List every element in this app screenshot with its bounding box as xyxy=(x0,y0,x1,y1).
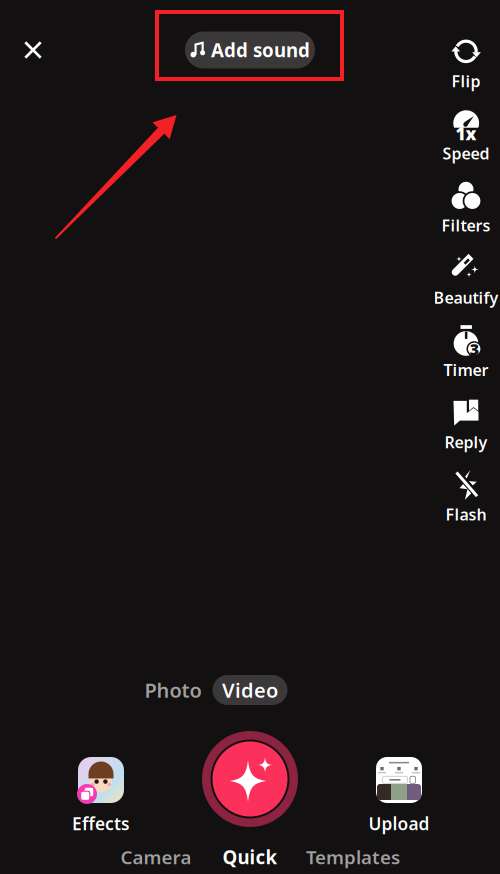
staticText: Beautify xyxy=(433,287,498,308)
button[interactable]: Upload xyxy=(368,757,429,835)
button[interactable]: 3 xyxy=(432,327,500,379)
staticText: Video xyxy=(222,677,278,703)
button[interactable]: Quick xyxy=(213,843,286,871)
staticText: Quick xyxy=(222,845,277,869)
staticText: Add sound xyxy=(211,38,310,62)
button[interactable]: Filters xyxy=(432,182,500,234)
staticText: Effects xyxy=(72,812,130,835)
button[interactable]: Templates xyxy=(297,843,409,871)
staticText: Speed xyxy=(442,143,489,164)
staticText: 1x xyxy=(455,122,476,145)
button[interactable]: Video xyxy=(212,675,287,705)
staticText: Flash xyxy=(445,504,486,525)
button[interactable]: Add sound xyxy=(185,31,315,68)
staticText: Reply xyxy=(444,431,487,453)
button[interactable]: Close xyxy=(11,28,55,72)
button[interactable]: Camera xyxy=(111,843,200,871)
staticText: Flip xyxy=(451,70,480,92)
staticText: Filters xyxy=(441,215,490,236)
staticText: Templates xyxy=(306,845,400,869)
button[interactable]: Flash xyxy=(432,471,500,523)
button[interactable]: Flip xyxy=(432,38,500,90)
staticText: Upload xyxy=(368,812,429,835)
button[interactable]: 1x xyxy=(432,110,500,162)
button[interactable]: Record xyxy=(202,731,298,827)
staticText: Timer xyxy=(443,359,488,380)
button[interactable]: Photo xyxy=(132,675,213,705)
button[interactable]: Reply xyxy=(432,399,500,451)
staticText: 3 xyxy=(470,338,479,360)
staticText: Photo xyxy=(144,677,201,703)
button[interactable]: Effects xyxy=(72,757,130,835)
button[interactable]: Beautify xyxy=(432,255,500,307)
staticText: Camera xyxy=(120,845,191,869)
